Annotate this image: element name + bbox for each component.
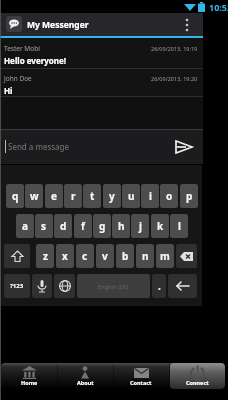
staticText: t (90, 189, 95, 203)
button[interactable]: b (116, 244, 134, 268)
button[interactable]: Connect (170, 363, 225, 389)
staticText: 26/09/2013, 19:20 (151, 75, 198, 82)
button[interactable]: x (56, 244, 74, 268)
staticText: About (77, 379, 94, 386)
button[interactable]: d (54, 214, 72, 238)
button[interactable]: r (64, 184, 82, 208)
staticText: m (160, 249, 170, 263)
button[interactable]: About (57, 363, 113, 389)
button[interactable]: p (180, 184, 198, 208)
button[interactable]: y (103, 184, 121, 208)
button[interactable] (54, 274, 75, 298)
button[interactable] (168, 274, 197, 298)
button[interactable] (4, 244, 30, 268)
button[interactable]: Tester Mobi (0, 38, 203, 69)
button[interactable] (32, 274, 52, 298)
button[interactable]: Send a message (0, 129, 203, 164)
staticText: 10:52 (209, 1, 228, 13)
button[interactable]: a (16, 214, 34, 238)
button[interactable]: Contact (113, 363, 169, 389)
button[interactable]: m (156, 244, 174, 268)
staticText: Hi (4, 85, 13, 96)
button[interactable]: f (74, 214, 92, 238)
staticText: r (71, 189, 76, 203)
staticText: ?123 (10, 282, 24, 290)
button[interactable] (178, 13, 196, 36)
staticText: Tester Mobi (4, 44, 40, 53)
staticText: h (118, 219, 125, 233)
button[interactable]: q (6, 184, 24, 208)
staticText: My Messenger (27, 19, 89, 31)
staticText: p (186, 189, 193, 203)
staticText: Home (21, 379, 38, 386)
staticText: n (142, 249, 149, 263)
button[interactable]: v (96, 244, 114, 268)
button[interactable]: s (35, 214, 53, 238)
button[interactable] (176, 244, 197, 268)
staticText: u (128, 189, 135, 203)
staticText: English (US) (98, 283, 129, 290)
staticText: l (178, 219, 181, 233)
staticText: Hello everyone! (4, 55, 67, 66)
staticText: w (30, 189, 39, 203)
staticText: q (12, 189, 19, 203)
staticText: d (60, 219, 67, 233)
button[interactable]: e (45, 184, 63, 208)
button[interactable]: k (151, 214, 169, 238)
button[interactable]: i (141, 184, 159, 208)
staticText: x (62, 249, 68, 263)
staticText: g (99, 219, 106, 233)
staticText: Connect (186, 379, 209, 386)
staticText: z (43, 249, 48, 263)
button[interactable]: z (36, 244, 54, 268)
staticText: 26/09/2013, 19:19 (151, 45, 198, 52)
staticText: v (102, 249, 108, 263)
button[interactable]: l (170, 214, 188, 238)
staticText: k (157, 219, 164, 233)
staticText: i (149, 189, 152, 203)
button[interactable]: g (93, 214, 111, 238)
button[interactable]: English (US) (77, 274, 150, 298)
button[interactable]: j (131, 214, 149, 238)
staticText: f (81, 219, 85, 233)
button[interactable]: c (76, 244, 94, 268)
staticText: Send a message (8, 141, 69, 152)
staticText: b (122, 249, 129, 263)
button[interactable]: Home (1, 363, 57, 389)
button[interactable]: w (25, 184, 43, 208)
staticText: c (82, 249, 88, 263)
staticText: j (139, 219, 142, 233)
button[interactable]: John Doe (0, 69, 203, 97)
staticText: e (51, 189, 57, 203)
button[interactable]: o (160, 184, 178, 208)
button[interactable] (171, 134, 197, 160)
staticText: John Doe (4, 74, 32, 83)
button[interactable]: h (112, 214, 130, 238)
button[interactable]: u (122, 184, 140, 208)
staticText: . (158, 279, 161, 293)
staticText: s (41, 219, 47, 233)
staticText: o (166, 189, 173, 203)
staticText: y (109, 189, 115, 203)
button[interactable]: t (83, 184, 101, 208)
staticText: Contact (130, 379, 152, 386)
button[interactable]: n (136, 244, 154, 268)
button[interactable]: ?123 (4, 274, 30, 298)
staticText: a (22, 219, 28, 233)
button[interactable]: . (152, 274, 166, 298)
button[interactable] (6, 16, 22, 32)
